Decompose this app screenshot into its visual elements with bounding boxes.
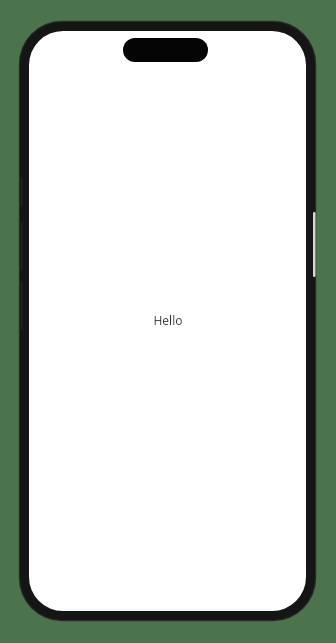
staticText: Hello [153,312,183,328]
button[interactable]: Hello greeting [153,312,183,328]
